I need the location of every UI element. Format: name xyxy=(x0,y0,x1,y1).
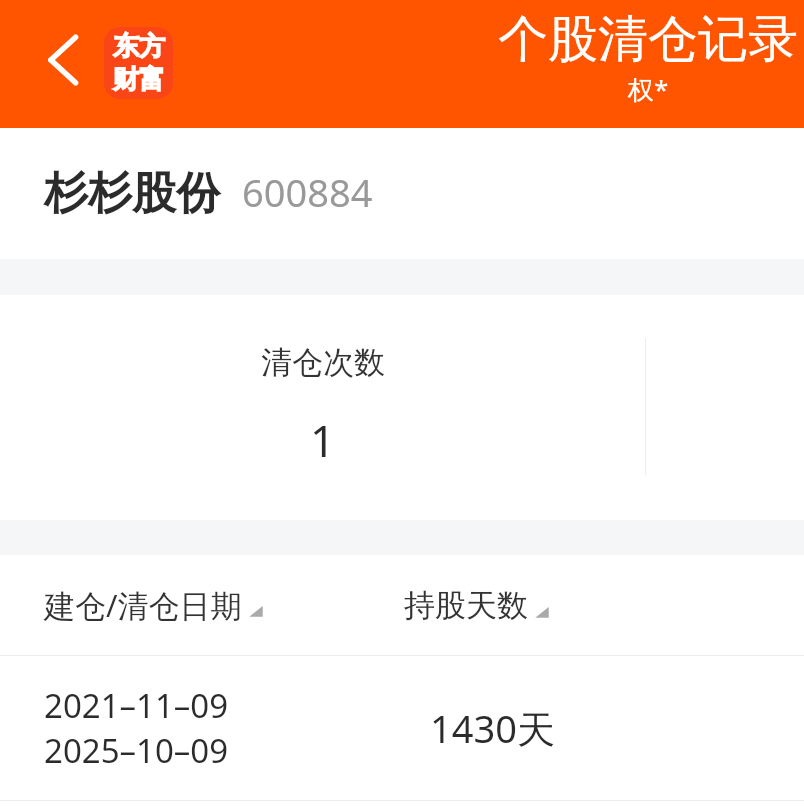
staticText: 清仓次数 xyxy=(261,343,385,382)
staticText: 财富 xyxy=(113,63,165,96)
button[interactable]: Back xyxy=(30,30,90,90)
staticText: 2025–10–09 xyxy=(44,728,229,773)
staticText: 1 xyxy=(310,410,336,470)
staticText: 东方 xyxy=(113,30,165,63)
button[interactable]: 杉杉股份 xyxy=(0,128,804,259)
button[interactable]: 建仓/清仓日期 xyxy=(44,584,264,626)
button[interactable]: 清仓次数 xyxy=(0,295,645,470)
staticText: 2021–11–09 xyxy=(44,683,229,728)
staticText: 个股清仓记录 xyxy=(498,8,798,71)
button[interactable]: East Money xyxy=(104,27,173,99)
staticText: 1430天 xyxy=(430,702,555,754)
staticText: 600884 xyxy=(242,166,373,218)
button[interactable]: 持股天数 xyxy=(404,586,550,625)
button[interactable]: 2021–11–09 xyxy=(0,656,804,800)
staticText: 建仓/清仓日期 xyxy=(44,584,242,626)
staticText: 杉杉股份 xyxy=(44,166,220,221)
staticText: 持股天数 xyxy=(404,586,528,625)
staticText: 权* xyxy=(628,71,669,107)
